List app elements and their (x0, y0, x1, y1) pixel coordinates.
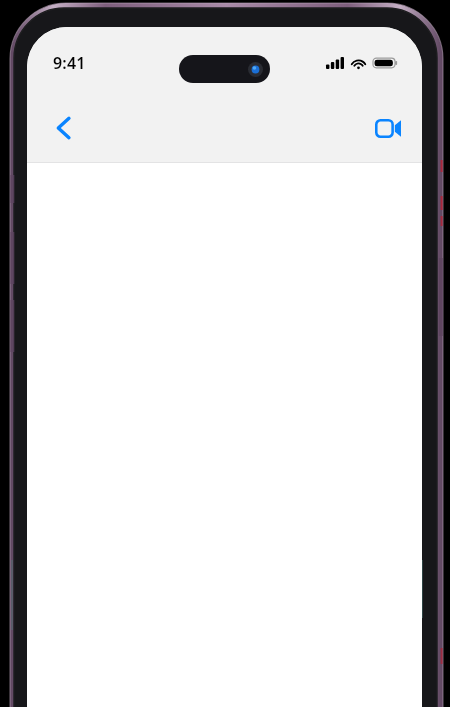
staticText: 9:41 (53, 52, 86, 74)
button[interactable]: Back (41, 106, 85, 150)
button[interactable]: Video call (366, 106, 410, 150)
